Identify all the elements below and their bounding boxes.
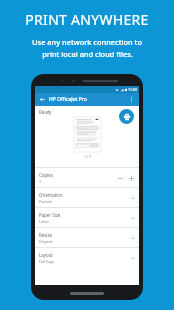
button[interactable]: Resize	[35, 228, 139, 247]
staticText: Letter	[39, 219, 50, 224]
staticText: print local and cloud files.	[42, 49, 133, 59]
staticText: Portrait	[39, 199, 52, 204]
staticText: PRINT ANYWHERE	[25, 10, 149, 29]
button[interactable]: Increase copies	[127, 174, 135, 182]
staticText: 1 / 1	[84, 154, 92, 159]
staticText: Resize	[39, 232, 52, 238]
staticText: Full Page	[39, 259, 55, 264]
button[interactable]: Decrease copies	[116, 174, 124, 182]
button[interactable]: Layout	[35, 248, 139, 267]
button[interactable]: Copies	[35, 168, 139, 187]
staticText: Ready	[39, 109, 52, 115]
staticText: Layout	[39, 252, 53, 258]
button[interactable]: Paper Size	[35, 208, 139, 227]
staticText: 11:00	[128, 87, 137, 92]
button[interactable]: Print	[119, 109, 134, 124]
staticText: Orientation	[39, 192, 63, 198]
button[interactable]: Back	[38, 95, 47, 104]
staticText: Paper Size	[39, 212, 61, 218]
button[interactable]: Orientation	[35, 188, 139, 207]
staticText: 1	[39, 179, 42, 184]
button[interactable]: More options	[127, 95, 136, 104]
staticText: HP OfficeJet Pro	[49, 96, 87, 103]
staticText: Use any network connection to	[32, 37, 142, 47]
staticText: Original	[39, 239, 53, 244]
staticText: Copies	[39, 172, 53, 178]
